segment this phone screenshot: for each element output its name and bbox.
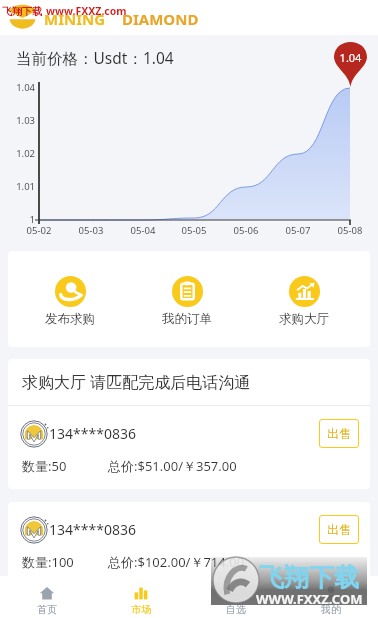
button[interactable]: 自选 bbox=[188, 576, 283, 618]
staticText: 首页 bbox=[37, 603, 57, 616]
staticText: 1.04 bbox=[334, 50, 367, 65]
staticText: 1 bbox=[0, 213, 35, 226]
button[interactable]: 我的 bbox=[283, 576, 378, 618]
button[interactable]: 出售 bbox=[319, 515, 359, 544]
staticText: 05-06 bbox=[226, 224, 266, 237]
button[interactable]: 市场 bbox=[94, 576, 188, 618]
staticText: 出售 bbox=[327, 522, 351, 537]
staticText: 我的 bbox=[321, 603, 341, 616]
button[interactable]: 134****0836 bbox=[8, 502, 370, 585]
staticText: 05-02 bbox=[19, 224, 59, 237]
staticText: 总价:$102.00/￥714.00 bbox=[108, 553, 245, 571]
staticText: 05-03 bbox=[71, 224, 111, 237]
staticText: 05-04 bbox=[123, 224, 163, 237]
staticText: 134****0836 bbox=[49, 424, 136, 443]
staticText: 数量:50 bbox=[22, 457, 67, 475]
button[interactable]: 求购大厅 bbox=[274, 276, 334, 327]
staticText: 求购大厅 bbox=[279, 311, 329, 327]
staticText: 当前价格：Usdt：1.04 bbox=[16, 47, 174, 68]
button[interactable]: 我的订单 bbox=[157, 276, 217, 327]
staticText: MINING bbox=[44, 9, 106, 29]
staticText: 自选 bbox=[226, 603, 246, 616]
staticText: 飞翔下载 bbox=[2, 5, 42, 18]
staticText: 市场 bbox=[131, 603, 151, 616]
staticText: WWW.FXXZ.COM bbox=[256, 590, 363, 605]
staticText: 总价:$51.00/￥357.00 bbox=[108, 457, 237, 475]
staticText: 发布求购 bbox=[45, 311, 95, 327]
staticText: 求购大厅 请匹配完成后电话沟通 bbox=[22, 371, 251, 393]
staticText: 1.04 bbox=[0, 81, 35, 94]
button[interactable]: 134****0836 bbox=[8, 406, 370, 489]
staticText: 1.01 bbox=[0, 180, 35, 193]
staticText: www.FXXZ.com bbox=[46, 4, 127, 18]
staticText: 134****0836 bbox=[49, 520, 136, 539]
staticText: 飞翔下载 bbox=[259, 562, 359, 593]
staticText: 出售 bbox=[327, 426, 351, 441]
staticText: 1.03 bbox=[0, 114, 35, 127]
staticText: DIAMOND bbox=[122, 9, 199, 29]
button[interactable]: 首页 bbox=[0, 576, 94, 618]
staticText: 05-08 bbox=[330, 224, 370, 237]
staticText: 05-05 bbox=[174, 224, 214, 237]
button[interactable]: 出售 bbox=[319, 419, 359, 448]
staticText: 数量:100 bbox=[22, 553, 74, 571]
staticText: 05-07 bbox=[278, 224, 318, 237]
staticText: 1.02 bbox=[0, 147, 35, 160]
button[interactable]: 发布求购 bbox=[40, 276, 100, 327]
staticText: 我的订单 bbox=[162, 311, 212, 327]
